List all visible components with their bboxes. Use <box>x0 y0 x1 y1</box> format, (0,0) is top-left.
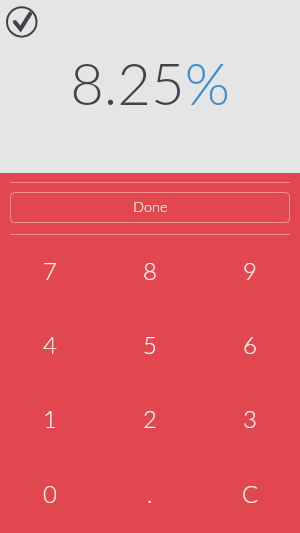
button[interactable]: 4 <box>0 309 100 383</box>
button[interactable]: 1 <box>0 383 100 458</box>
button[interactable]: 8 <box>100 235 200 309</box>
staticText: 0 <box>43 479 57 508</box>
staticText: 5 <box>143 330 157 359</box>
staticText: 8.25% <box>0 48 300 118</box>
button[interactable]: 2 <box>100 383 200 458</box>
button[interactable]: Confirm <box>0 0 44 44</box>
staticText: 4 <box>43 330 57 359</box>
staticText: 8 <box>143 256 157 285</box>
button[interactable]: 7 <box>0 235 100 309</box>
button[interactable]: 9 <box>200 235 300 309</box>
staticText: 6 <box>243 330 257 359</box>
staticText: 1 <box>43 404 57 433</box>
staticText: . <box>147 479 153 508</box>
button[interactable]: 5 <box>100 309 200 383</box>
staticText: 9 <box>243 256 257 285</box>
staticText: 3 <box>243 404 257 433</box>
button[interactable]: . <box>100 458 200 533</box>
staticText: 7 <box>43 256 57 285</box>
staticText: 2 <box>143 404 157 433</box>
button[interactable]: Done <box>10 192 290 223</box>
button[interactable]: 6 <box>200 309 300 383</box>
button[interactable]: C <box>200 458 300 533</box>
staticText: Done <box>133 198 168 215</box>
staticText: C <box>242 479 259 508</box>
button[interactable]: 3 <box>200 383 300 458</box>
button[interactable]: 0 <box>0 458 100 533</box>
